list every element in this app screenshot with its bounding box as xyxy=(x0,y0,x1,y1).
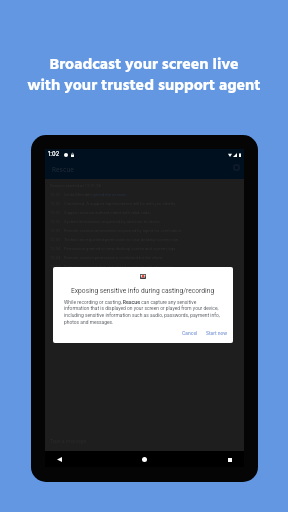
staticText: Broadcast your screen live with your tru… xyxy=(0,52,288,99)
staticText: Connected. A support representative will… xyxy=(64,201,177,206)
staticText: Exposing sensitive info during casting/r… xyxy=(71,287,215,295)
staticText: Support session authenticated with valid… xyxy=(64,210,151,215)
staticText: Cancel xyxy=(182,331,198,337)
staticText: Start now xyxy=(206,331,228,337)
button[interactable]: 12:04 xyxy=(50,262,244,271)
staticText: Permission granted to view desktop scree… xyxy=(64,246,177,251)
button[interactable]: Back xyxy=(53,453,66,466)
button[interactable]: Home xyxy=(138,453,151,466)
staticText: Rescue xyxy=(52,166,74,174)
staticText: 12:04 xyxy=(50,264,61,269)
staticText: While recording or casting, Rescue can c… xyxy=(64,299,222,325)
staticText: Linda Meredith joined the session xyxy=(64,192,127,197)
button[interactable]: Start now xyxy=(204,330,230,338)
button[interactable]: Recent apps xyxy=(223,453,236,466)
staticText: Support representative requested screen … xyxy=(64,264,175,269)
button[interactable]: Cancel xyxy=(180,330,200,338)
button[interactable]: Session info xyxy=(231,162,242,173)
staticText: 1:02 xyxy=(48,151,60,158)
